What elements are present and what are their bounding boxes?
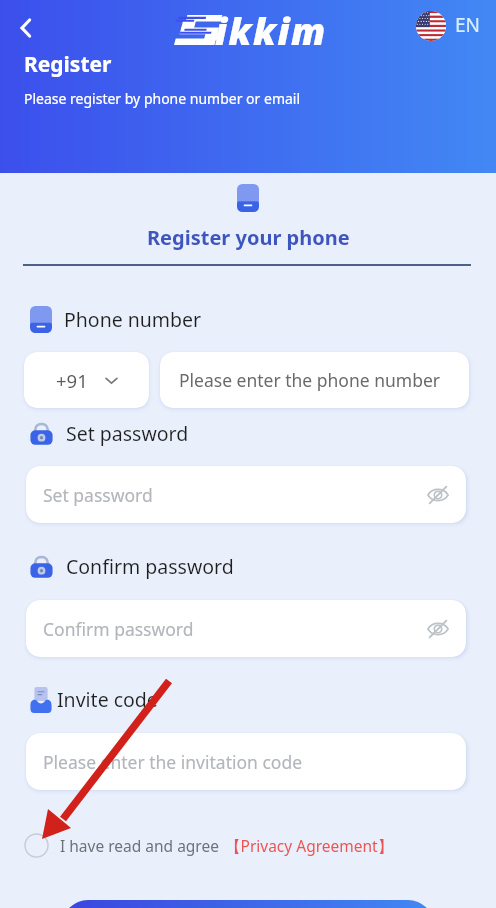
staticText: ikkim [215, 5, 327, 55]
staticText: Invite code [57, 686, 158, 713]
button[interactable]: EN [416, 11, 481, 41]
staticText: Phone number [64, 306, 202, 333]
button[interactable]: Set password [26, 466, 466, 523]
button[interactable]: Register [62, 900, 434, 908]
staticText: I have read and agree [60, 835, 219, 856]
button[interactable]: Toggle password visibility [427, 484, 449, 506]
button[interactable]: Toggle password visibility [427, 618, 449, 640]
button[interactable]: Agree to privacy agreement [24, 833, 49, 858]
staticText: Set password [43, 483, 153, 507]
staticText: Confirm password [66, 553, 234, 580]
button[interactable]: Please enter the phone number [160, 352, 469, 408]
button[interactable]: Back [10, 12, 42, 44]
staticText: Set password [66, 420, 189, 447]
staticText: Register [24, 50, 112, 79]
staticText: Please enter the invitation code [43, 750, 303, 774]
button[interactable]: Confirm password [26, 600, 466, 657]
staticText: +91 [56, 368, 88, 393]
button[interactable]: +91 [24, 352, 149, 408]
staticText: Please register by phone number or email [24, 89, 301, 108]
staticText: Register your phone [147, 224, 350, 251]
button[interactable]: 【Privacy Agreement】 [225, 835, 394, 856]
staticText: EN [455, 12, 481, 38]
staticText: Confirm password [43, 617, 194, 641]
button[interactable]: Please enter the invitation code [26, 733, 466, 790]
staticText: Please enter the phone number [179, 368, 441, 392]
